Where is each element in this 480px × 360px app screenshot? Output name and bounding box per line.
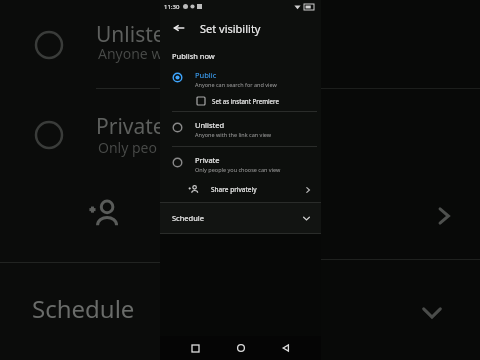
- staticText: Unlisted: [195, 120, 225, 130]
- staticText: Share privately: [211, 185, 257, 194]
- button[interactable]: Set as instant Premiere: [160, 90, 321, 111]
- button[interactable]: Recent apps: [185, 338, 205, 358]
- button[interactable]: Home: [231, 338, 251, 358]
- staticText: Private: [195, 155, 220, 165]
- staticText: Only peo: [98, 138, 157, 157]
- staticText: Set visibility: [200, 21, 261, 36]
- button[interactable]: Unlisted: [160, 112, 321, 146]
- button[interactable]: Private: [160, 147, 321, 179]
- staticText: Anyone with the link can view: [195, 131, 272, 138]
- staticText: Schedule: [32, 292, 135, 325]
- button[interactable]: Back: [276, 338, 296, 358]
- staticText: Public: [195, 70, 217, 80]
- staticText: Set as instant Premiere: [212, 97, 279, 105]
- button[interactable]: Back: [168, 17, 190, 39]
- staticText: 11:30: [164, 3, 180, 11]
- staticText: Only people you choose can view: [195, 166, 281, 173]
- staticText: Schedule: [172, 213, 204, 223]
- staticText: Publish now: [172, 51, 215, 61]
- staticText: Private: [96, 112, 165, 141]
- staticText: Anyone can search for and view: [195, 81, 277, 88]
- staticText: Anyone w: [98, 44, 163, 63]
- button[interactable]: Share privately: [160, 179, 321, 202]
- button[interactable]: Schedule: [160, 203, 321, 233]
- staticText: Unlisted: [96, 20, 178, 49]
- button[interactable]: Public: [160, 68, 321, 90]
